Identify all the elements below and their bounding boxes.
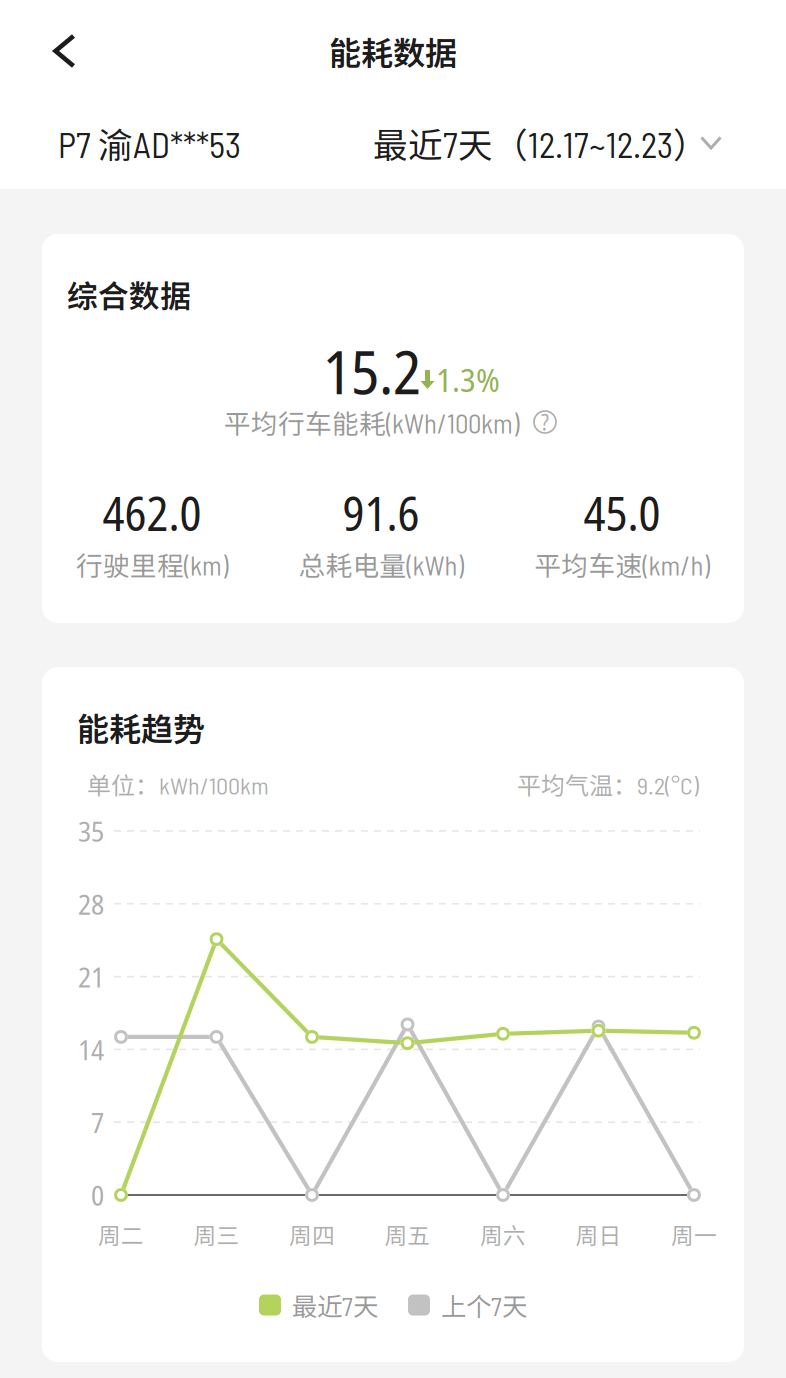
staticText: 综合数据 bbox=[67, 272, 191, 316]
staticText: 平均车速(km/h) bbox=[534, 545, 709, 583]
staticText: 7 bbox=[91, 1103, 104, 1141]
staticText: 21 bbox=[78, 957, 104, 996]
staticText: 15.2 bbox=[323, 330, 421, 412]
staticText: ? bbox=[541, 407, 549, 437]
staticText: 0 bbox=[91, 1176, 104, 1214]
staticText: 行驶里程(km) bbox=[76, 545, 228, 583]
staticText: 周日 bbox=[575, 1218, 621, 1250]
staticText: 周二 bbox=[98, 1218, 144, 1250]
staticText: 单位：kWh/100km bbox=[87, 767, 269, 801]
staticText: 35 bbox=[78, 812, 104, 850]
staticText: 28 bbox=[78, 885, 104, 923]
staticText: 周六 bbox=[480, 1218, 526, 1250]
staticText: 能耗趋势 bbox=[77, 704, 205, 750]
staticText: 总耗电量(kWh) bbox=[298, 545, 463, 583]
button[interactable]: 返回 bbox=[0, 19, 106, 82]
staticText: 能耗数据 bbox=[329, 28, 457, 74]
staticText: 最近7天（12.17~12.23） bbox=[373, 118, 708, 168]
staticText: 平均气温：9.2(°C) bbox=[517, 767, 699, 801]
staticText: 91.6 bbox=[342, 481, 419, 545]
staticText: 最近7天 bbox=[292, 1287, 378, 1323]
staticText: 462.0 bbox=[102, 481, 201, 545]
staticText: 平均行车能耗(kWh/100km) bbox=[224, 403, 519, 441]
staticText: 周三 bbox=[193, 1218, 239, 1250]
staticText: P7 渝AD***53 bbox=[58, 118, 241, 168]
staticText: 1.3% bbox=[436, 356, 500, 402]
staticText: 周一 bbox=[671, 1218, 717, 1250]
staticText: 周四 bbox=[289, 1218, 335, 1250]
staticText: 14 bbox=[78, 1030, 104, 1068]
staticText: 上个7天 bbox=[441, 1287, 527, 1323]
staticText: 周五 bbox=[384, 1218, 430, 1250]
button[interactable]: 最近7天（12.17~12.23） bbox=[365, 124, 722, 162]
staticText: 45.0 bbox=[583, 481, 660, 545]
